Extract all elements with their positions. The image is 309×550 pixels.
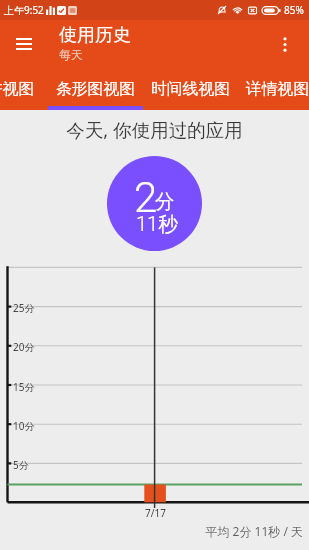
button[interactable]: 详情视图	[238, 68, 309, 110]
staticText: 饼视图	[0, 79, 35, 99]
staticText: 20分	[13, 340, 35, 354]
staticText: 平均 2分 11秒 / 天	[0, 523, 303, 539]
staticText: 上午9:52	[4, 3, 44, 17]
staticText: 2	[134, 173, 158, 222]
staticText: 时间线视图	[151, 79, 230, 99]
staticText: 条形图视图	[56, 79, 135, 99]
staticText: 详情视图	[246, 79, 309, 99]
button[interactable]: More options	[261, 20, 309, 68]
button[interactable]: 2	[107, 156, 202, 251]
button[interactable]: Navigation menu	[0, 20, 48, 68]
button[interactable]: 时间线视图	[143, 68, 238, 110]
staticText: 7/17	[145, 506, 166, 520]
staticText: 今天, 你使用过的应用	[0, 117, 309, 142]
staticText: 分	[155, 189, 175, 214]
staticText: 10分	[13, 419, 35, 433]
staticText: 85%	[284, 3, 304, 17]
button[interactable]: 饼视图	[0, 68, 48, 110]
staticText: 使用历史	[59, 24, 131, 47]
staticText: 5分	[13, 458, 29, 472]
staticText: 15分	[13, 380, 35, 394]
staticText: 25分	[13, 301, 35, 315]
staticText: 11秒	[136, 212, 179, 237]
button[interactable]: 条形图视图	[48, 68, 143, 110]
staticText: 每天	[59, 47, 83, 62]
